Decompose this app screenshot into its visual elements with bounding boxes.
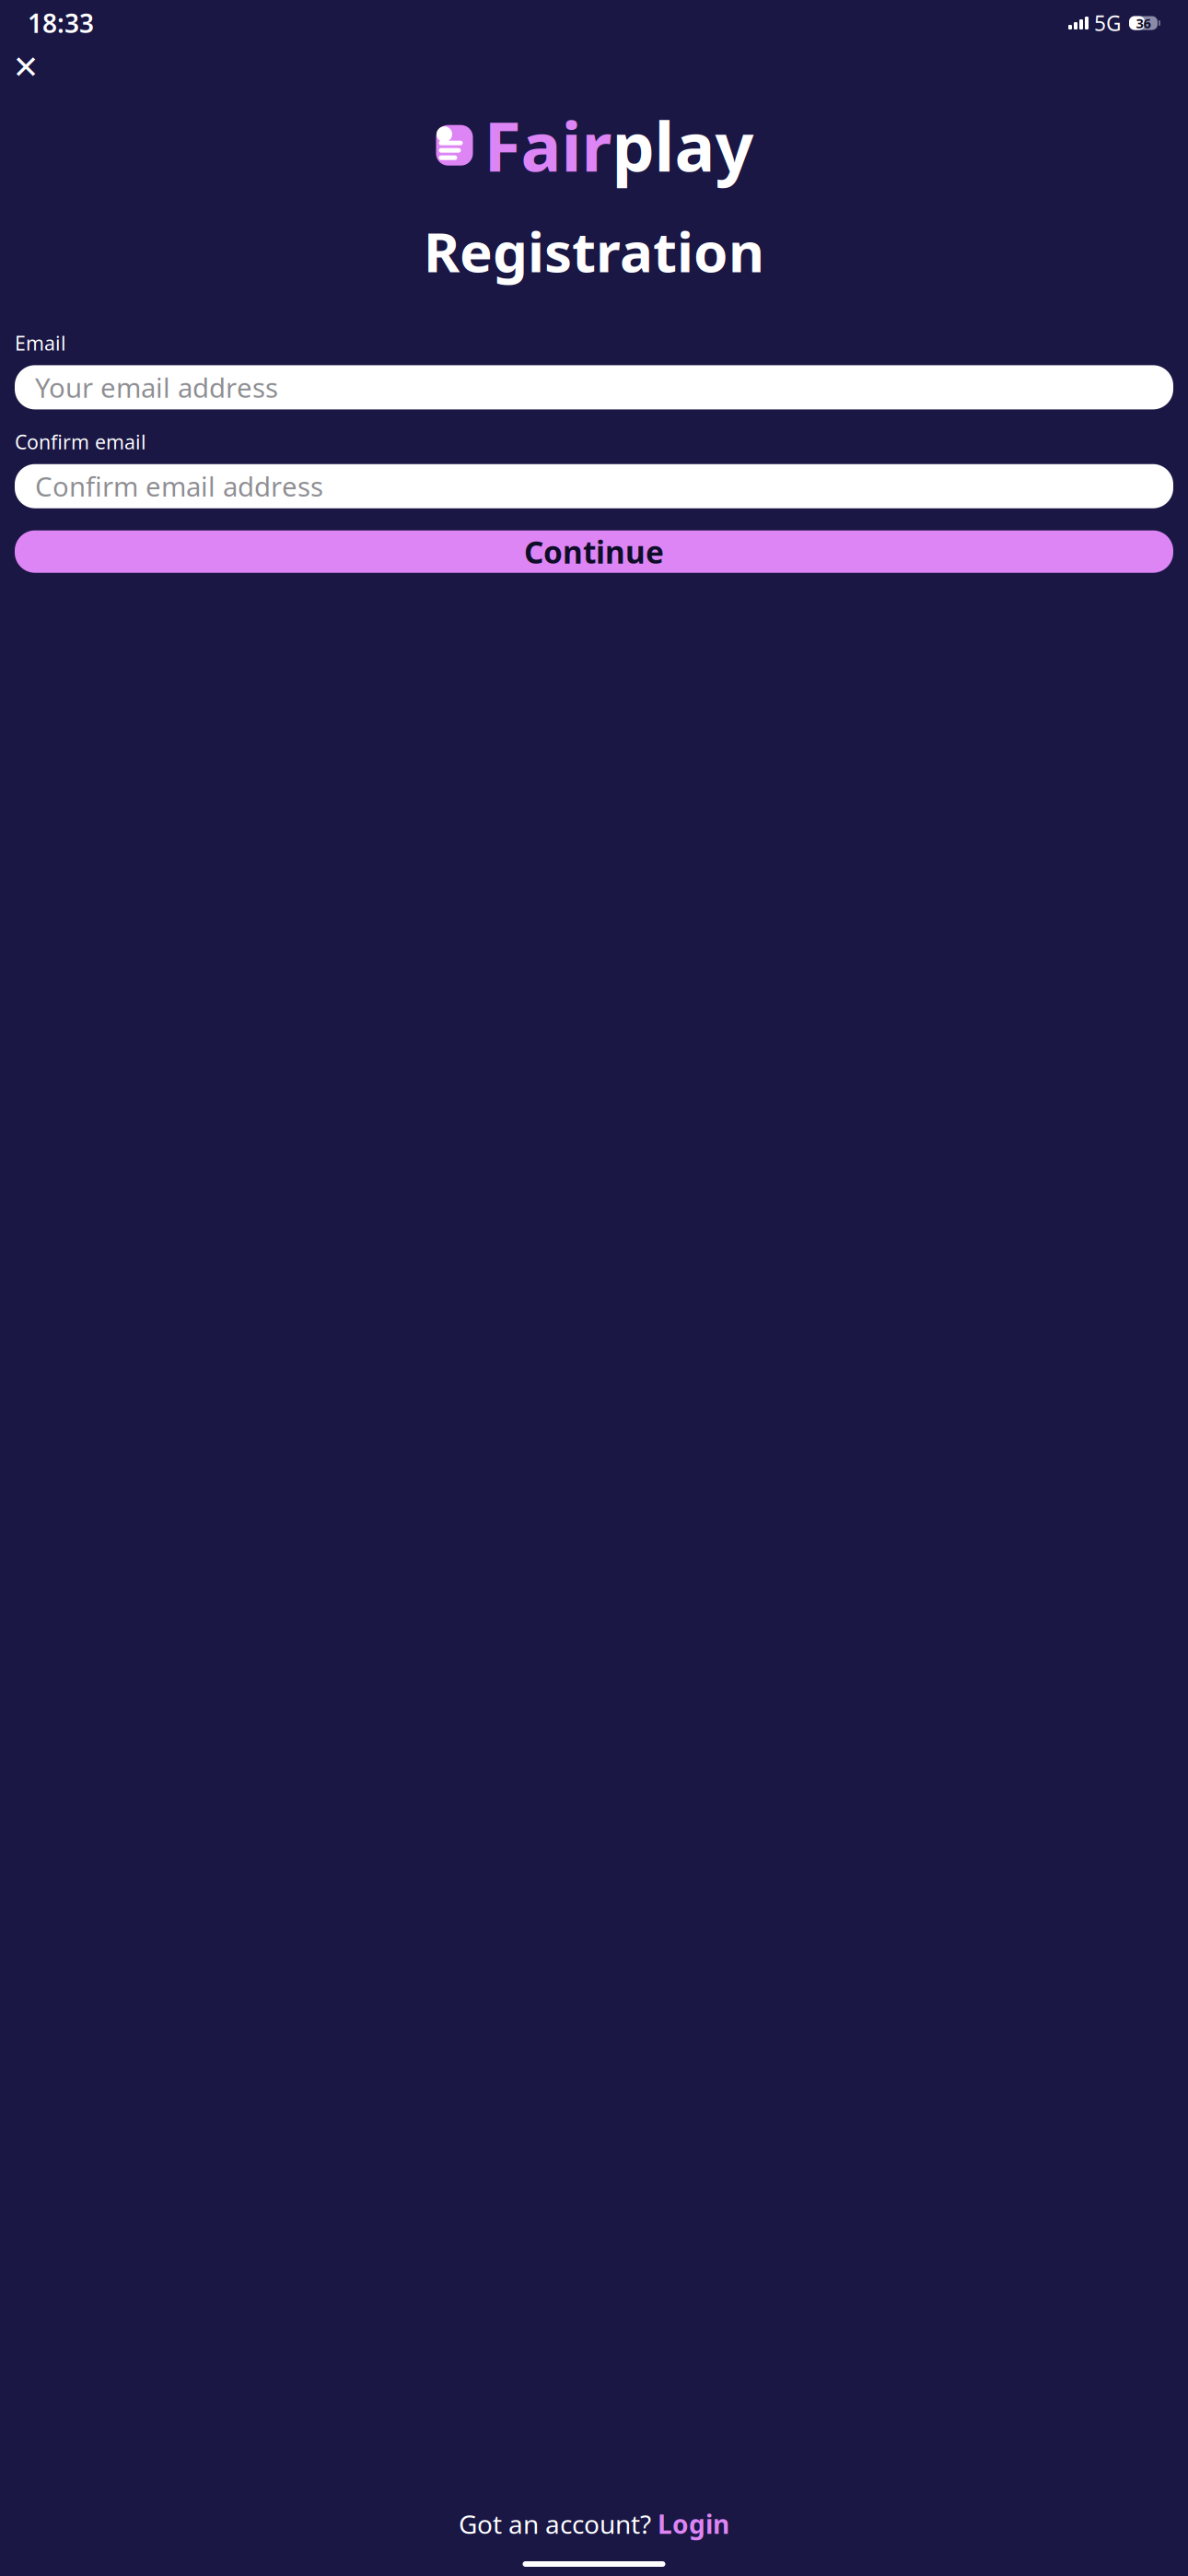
staticText: Your email address xyxy=(35,369,278,405)
button[interactable]: Login xyxy=(658,2507,729,2541)
staticText: 18:33 xyxy=(28,6,94,40)
staticText: Got an account? xyxy=(459,2507,658,2541)
staticText: 5G xyxy=(1094,9,1122,37)
staticText: Email xyxy=(15,330,66,356)
button[interactable]: Close xyxy=(6,47,46,88)
staticText: ✕ xyxy=(12,49,39,85)
staticText: Fair xyxy=(484,100,612,190)
staticText: play xyxy=(612,100,754,190)
staticText: 36 xyxy=(1136,14,1151,32)
button[interactable]: Confirm email address xyxy=(15,464,1173,508)
staticText: Registration xyxy=(424,214,764,288)
staticText: Confirm email xyxy=(15,429,146,455)
button[interactable]: Continue xyxy=(15,530,1173,573)
staticText: Confirm email address xyxy=(35,468,323,504)
button[interactable]: Your email address xyxy=(15,365,1173,409)
staticText: Login xyxy=(658,2507,729,2541)
staticText: Continue xyxy=(524,531,664,572)
